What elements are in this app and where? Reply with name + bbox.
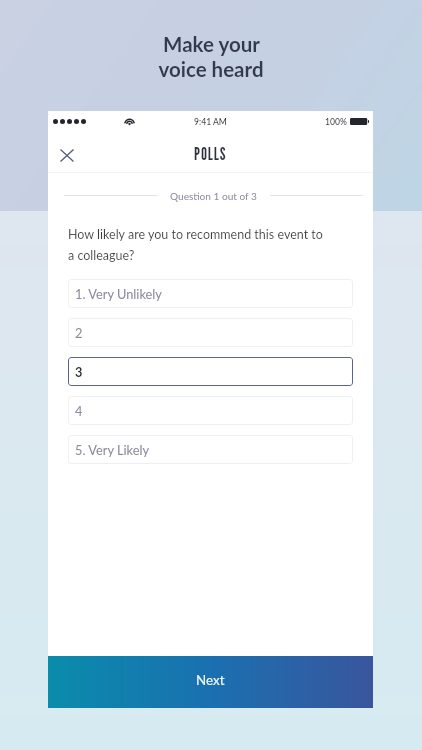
staticText: 4 xyxy=(75,403,83,418)
staticText: POLLS xyxy=(194,144,227,164)
staticText: Next xyxy=(196,672,225,688)
button[interactable]: 3 xyxy=(68,357,353,386)
button[interactable]: 4 xyxy=(68,396,353,425)
staticText: Make your xyxy=(163,32,260,57)
staticText: voice heard xyxy=(158,57,264,82)
staticText: 2 xyxy=(75,325,83,340)
staticText: Question 1 out of 3 xyxy=(170,190,257,202)
button[interactable]: 2 xyxy=(68,318,353,347)
staticText: 5. Very Likely xyxy=(75,442,150,457)
staticText: 3 xyxy=(75,364,83,379)
button[interactable]: Close xyxy=(55,143,79,167)
staticText: How likely are you to recommend this eve… xyxy=(68,227,323,263)
button[interactable]: 5. Very Likely xyxy=(68,435,353,464)
button[interactable]: 1. Very Unlikely xyxy=(68,279,353,308)
staticText: 1. Very Unlikely xyxy=(75,286,162,301)
staticText: 9:41 AM xyxy=(194,117,227,127)
button[interactable]: Next xyxy=(48,656,373,708)
staticText: 100% xyxy=(325,117,347,127)
